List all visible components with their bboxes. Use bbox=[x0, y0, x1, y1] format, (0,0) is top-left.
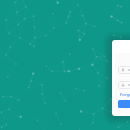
button[interactable]: Forgot password? bbox=[120, 92, 130, 98]
staticText: Forgot password? bbox=[120, 92, 130, 98]
button[interactable]: Username bbox=[118, 66, 130, 74]
button[interactable]: Password bbox=[118, 81, 130, 89]
button[interactable]: Sign in bbox=[118, 100, 130, 108]
